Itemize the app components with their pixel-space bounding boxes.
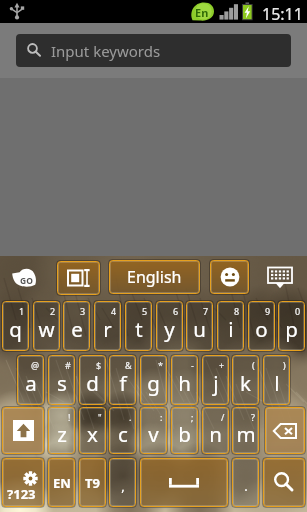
staticText: b: [178, 420, 191, 448]
staticText: w: [38, 315, 55, 343]
button[interactable]: &: [108, 354, 137, 406]
staticText: &: [125, 359, 132, 371]
staticText: i: [228, 315, 234, 343]
staticText: y: [164, 315, 175, 343]
staticText: Input keywords: [51, 41, 161, 61]
staticText: 5: [142, 305, 148, 317]
button[interactable]: #: [47, 354, 76, 406]
staticText: k: [240, 369, 251, 397]
staticText: z: [57, 420, 67, 448]
staticText: x: [87, 420, 98, 448]
staticText: u: [193, 315, 206, 343]
staticText: 6: [173, 305, 179, 317]
button[interactable]: T9: [78, 457, 107, 508]
button[interactable]: ,: [108, 457, 137, 508]
staticText: o: [255, 315, 268, 343]
staticText: :: [160, 411, 163, 423]
staticText: q: [9, 315, 22, 343]
staticText: n: [209, 420, 222, 448]
staticText: /: [221, 411, 225, 423]
button[interactable]: Emoji: [209, 259, 250, 295]
button[interactable]: $: [78, 354, 107, 406]
button[interactable]: Keyboard layout: [56, 260, 101, 296]
button[interactable]: Backspace: [264, 406, 306, 455]
button[interactable]: GO Keyboard: [10, 267, 40, 289]
staticText: T9: [85, 474, 100, 492]
staticText: *: [158, 359, 163, 371]
button[interactable]: 2: [32, 300, 61, 352]
button[interactable]: 9: [247, 300, 276, 352]
staticText: 8: [234, 305, 240, 317]
button[interactable]: @: [16, 354, 45, 406]
staticText: v: [148, 420, 159, 448]
staticText: g: [147, 369, 160, 397]
staticText: .: [244, 477, 248, 495]
button[interactable]: +: [201, 354, 230, 406]
staticText: a: [25, 369, 37, 397]
button[interactable]: (: [231, 354, 260, 406]
staticText: ,: [121, 477, 125, 495]
button[interactable]: Search: [262, 457, 306, 508]
staticText: $: [96, 359, 102, 371]
button[interactable]: 6: [155, 300, 184, 352]
button[interactable]: 1: [1, 300, 30, 352]
staticText: GO: [20, 275, 33, 287]
button[interactable]: ): [262, 354, 291, 406]
staticText: 1: [19, 305, 25, 317]
staticText: En: [195, 5, 209, 20]
button[interactable]: 5: [124, 300, 153, 352]
staticText: m: [236, 420, 256, 448]
button[interactable]: Switch keyboard: [266, 265, 296, 289]
staticText: ): [283, 359, 286, 371]
button[interactable]: 3: [62, 300, 91, 352]
staticText: EN: [53, 474, 71, 492]
staticText: .: [129, 411, 132, 423]
staticText: ": [98, 411, 102, 423]
button[interactable]: ?: [231, 406, 260, 455]
staticText: d: [86, 369, 99, 397]
staticText: @: [31, 359, 40, 371]
staticText: s: [57, 369, 67, 397]
staticText: 4: [111, 305, 117, 317]
staticText: 0: [295, 305, 301, 317]
staticText: h: [178, 369, 191, 397]
staticText: 15:11: [262, 3, 303, 25]
staticText: 3: [80, 305, 86, 317]
button[interactable]: EN: [47, 457, 76, 508]
button[interactable]: Shift: [1, 406, 45, 455]
staticText: #: [65, 359, 71, 371]
button[interactable]: 4: [93, 300, 122, 352]
staticText: +: [219, 359, 225, 371]
button[interactable]: ;: [170, 406, 199, 455]
staticText: r: [103, 315, 112, 343]
staticText: ?123: [7, 485, 36, 503]
button[interactable]: .: [108, 406, 137, 455]
staticText: l: [274, 369, 280, 397]
button[interactable]: *: [139, 354, 168, 406]
button[interactable]: ": [78, 406, 107, 455]
staticText: -: [191, 359, 194, 371]
button[interactable]: .: [231, 457, 260, 508]
button[interactable]: English: [108, 259, 201, 295]
staticText: f: [119, 369, 127, 397]
staticText: (: [252, 359, 255, 371]
button[interactable]: !: [47, 406, 76, 455]
staticText: 9: [265, 305, 271, 317]
staticText: j: [213, 369, 219, 397]
button[interactable]: Input keywords: [16, 34, 291, 67]
staticText: English: [127, 266, 182, 288]
staticText: p: [285, 315, 298, 343]
button[interactable]: 8: [216, 300, 245, 352]
button[interactable]: -: [170, 354, 199, 406]
staticText: ;: [191, 411, 194, 423]
button[interactable]: /: [201, 406, 230, 455]
staticText: e: [71, 315, 83, 343]
staticText: !: [68, 411, 71, 423]
button[interactable]: 7: [185, 300, 214, 352]
button[interactable]: Symbols: [1, 457, 45, 508]
button[interactable]: :: [139, 406, 168, 455]
button[interactable]: Space: [139, 457, 229, 508]
button[interactable]: 0: [277, 300, 306, 352]
staticText: ?: [251, 411, 255, 423]
staticText: c: [118, 420, 128, 448]
